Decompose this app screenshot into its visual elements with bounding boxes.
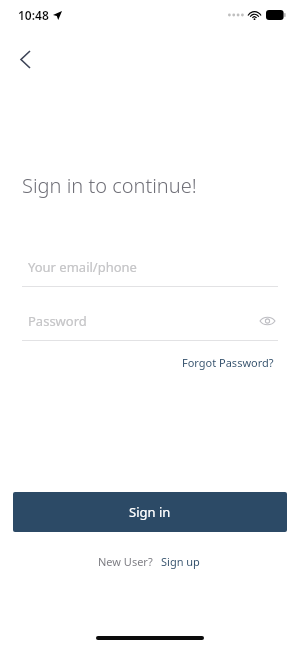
staticText: Your email/phone	[28, 258, 137, 276]
staticText: Sign up	[161, 554, 200, 569]
button[interactable]: Show password	[256, 310, 278, 332]
staticText: Password	[28, 312, 87, 330]
staticText: Sign in to continue!	[22, 172, 197, 199]
button[interactable]: Password	[22, 309, 278, 333]
button[interactable]: Your email/phone	[22, 255, 278, 279]
button[interactable]: Back	[8, 42, 42, 76]
button[interactable]: Forgot Password?	[178, 351, 278, 374]
staticText: Forgot Password?	[182, 355, 274, 370]
button[interactable]: Sign in	[13, 492, 287, 532]
staticText: 10:48	[18, 7, 49, 23]
button[interactable]: Sign up	[159, 552, 202, 571]
staticText: Sign in	[129, 503, 171, 521]
staticText: New User?	[98, 554, 153, 569]
